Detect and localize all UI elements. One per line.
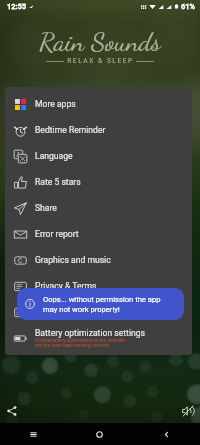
staticText: Bedtime Reminder [35,125,106,135]
button[interactable]: Oops... without permission the app may n… [17,288,184,320]
button[interactable]: Home [66,423,133,445]
staticText: 12:55 [7,2,27,11]
button[interactable]: Bedtime Reminder [5,117,192,143]
button[interactable]: Mute sound [180,403,196,419]
staticText: Battery optimization settings [35,328,145,338]
staticText: Share [35,203,57,213]
button[interactable]: More apps [5,91,192,117]
staticText: Oops... without permission the app may n… [43,295,161,313]
staticText: RELAX & SLEEP [67,57,134,65]
button[interactable]: Share [5,195,192,221]
staticText: Terms of use [35,307,86,317]
button[interactable]: Error report [5,221,192,247]
button[interactable]: Graphics and music [5,247,192,273]
button[interactable]: Recent apps [0,423,66,445]
button[interactable]: Share [4,403,20,419]
button[interactable]: Privacy & Terms [5,273,192,299]
staticText: Disable battery optimization so the remi… [35,338,126,348]
staticText: Rate 5 stars [35,177,81,187]
button[interactable]: Language [5,143,192,169]
button[interactable]: Battery optimization settings [5,325,192,351]
staticText: Graphics and music [35,255,111,265]
staticText: Rain Sounds [39,26,161,58]
button[interactable]: Back [133,423,200,445]
staticText: 61% [181,2,196,11]
staticText: Language [35,151,73,161]
staticText: Privacy & Terms [35,281,97,291]
staticText: Error report [35,229,79,239]
button[interactable]: Terms of use [5,299,192,325]
button[interactable]: Rate 5 stars [5,169,192,195]
staticText: More apps [35,99,76,109]
